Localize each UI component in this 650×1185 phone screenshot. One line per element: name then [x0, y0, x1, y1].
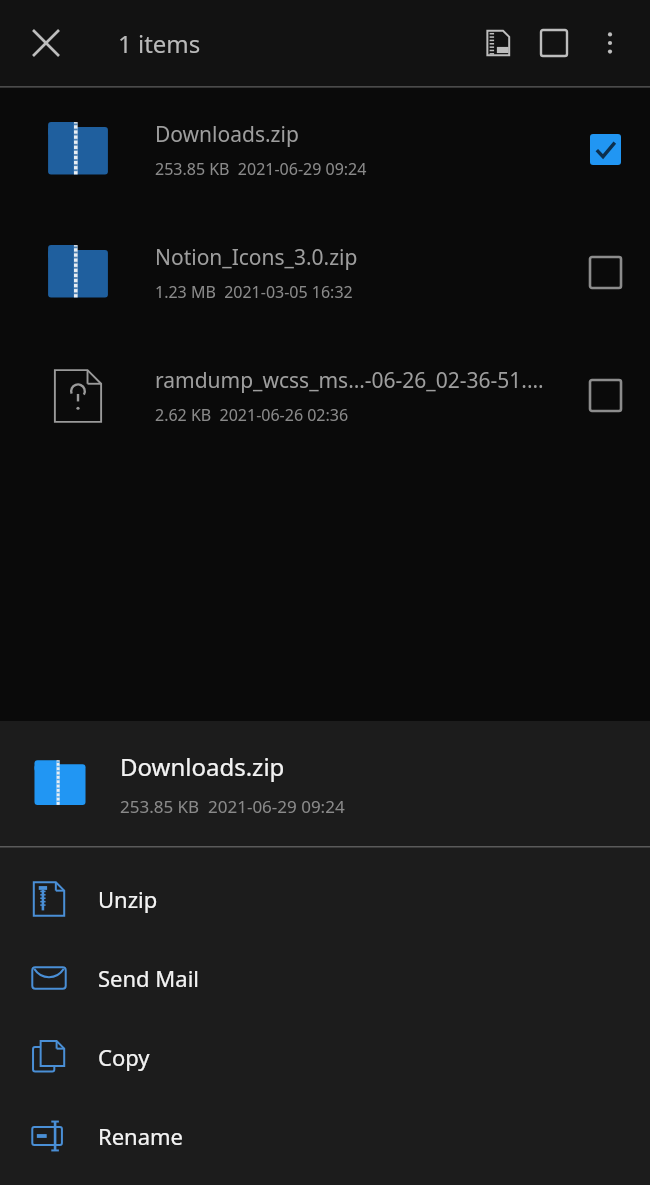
staticText: 1 items — [118, 27, 201, 60]
button[interactable]: Downloads.zip — [0, 88, 650, 211]
staticText: Send Mail — [98, 963, 199, 993]
button[interactable]: Downloads.zip — [0, 721, 650, 846]
button[interactable]: Send Mail — [0, 938, 650, 1017]
button[interactable]: More options — [582, 15, 638, 71]
staticText: 2.62 KB 2021-06-26 02:36 — [155, 404, 349, 426]
staticText: ramdump_wcss_ms…-06-26_02-36-51.tgz — [155, 366, 546, 395]
button[interactable]: ramdump_wcss_ms…-06-26_02-36-51.tgz — [0, 334, 650, 457]
button[interactable]: Copy — [0, 1017, 650, 1096]
staticText: 1.23 MB 2021-03-05 16:32 — [155, 281, 353, 303]
button[interactable]: Select all — [526, 15, 582, 71]
button[interactable]: Close — [16, 13, 76, 73]
staticText: Downloads.zip — [155, 120, 299, 149]
button[interactable]: Unzip — [0, 859, 650, 938]
staticText: Unzip — [98, 884, 158, 914]
staticText: Notion_Icons_3.0.zip — [155, 243, 358, 272]
staticText: Copy — [98, 1042, 150, 1072]
staticText: Rename — [98, 1121, 184, 1151]
button[interactable]: Rename — [0, 1096, 650, 1175]
button[interactable]: Notion_Icons_3.0.zip — [0, 211, 650, 334]
staticText: 253.85 KB 2021-06-29 09:24 — [155, 158, 367, 180]
staticText: Downloads.zip — [120, 750, 285, 783]
button[interactable]: Archive — [470, 15, 526, 71]
staticText: 253.85 KB 2021-06-29 09:24 — [120, 795, 345, 818]
